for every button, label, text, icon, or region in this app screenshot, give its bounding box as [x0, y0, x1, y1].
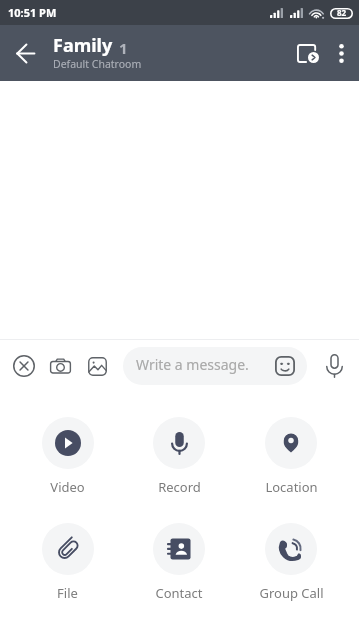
- staticText: 82: [337, 7, 347, 18]
- button[interactable]: Back: [0, 25, 50, 81]
- staticText: Group Call: [259, 584, 324, 602]
- button[interactable]: More options: [326, 25, 356, 81]
- staticText: Contact: [155, 584, 203, 602]
- button[interactable]: Group Call: [235, 523, 347, 602]
- button[interactable]: Record: [123, 417, 235, 496]
- button[interactable]: File: [12, 523, 123, 602]
- button[interactable]: Cast: [290, 25, 326, 81]
- staticText: 10:51 PM: [8, 5, 57, 20]
- staticText: Video: [50, 478, 85, 496]
- button[interactable]: Location: [235, 417, 347, 496]
- button[interactable]: Camera: [42, 340, 79, 392]
- button[interactable]: Close: [5, 340, 42, 392]
- staticText: Location: [265, 478, 318, 496]
- staticText: Family: [53, 33, 113, 58]
- button[interactable]: Write a message.: [123, 347, 307, 385]
- staticText: Write a message.: [136, 355, 268, 374]
- staticText: Record: [158, 478, 201, 496]
- button[interactable]: Voice message: [315, 340, 353, 392]
- staticText: File: [57, 584, 78, 602]
- button[interactable]: Emoji: [268, 349, 302, 383]
- button[interactable]: Gallery: [79, 340, 116, 392]
- staticText: Default Chatroom: [53, 57, 142, 71]
- button[interactable]: Contact: [123, 523, 235, 602]
- button[interactable]: Video: [12, 417, 123, 496]
- staticText: 1: [119, 38, 128, 58]
